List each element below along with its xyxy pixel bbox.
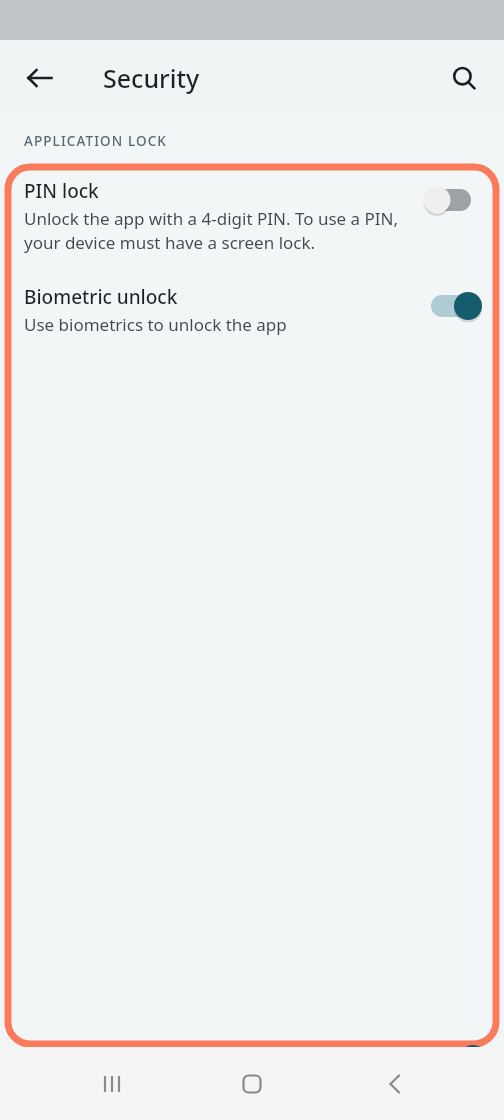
button[interactable]: PIN lock [5,164,499,268]
button[interactable]: Recent apps [83,1055,141,1113]
button[interactable]: Back [364,1055,422,1113]
staticText: APPLICATION LOCK [24,132,167,150]
button[interactable]: Back [16,54,64,102]
staticText: Unlock the app with a 4-digit PIN. To us… [24,207,419,254]
button[interactable]: Biometric unlock [5,268,499,354]
staticText: PIN lock [24,178,99,204]
staticText: Biometric unlock [24,284,178,310]
staticText: Use biometrics to unlock the app [24,313,287,336]
button[interactable]: Search [440,54,488,102]
staticText: Security [103,61,200,95]
button[interactable]: Home [223,1055,281,1113]
